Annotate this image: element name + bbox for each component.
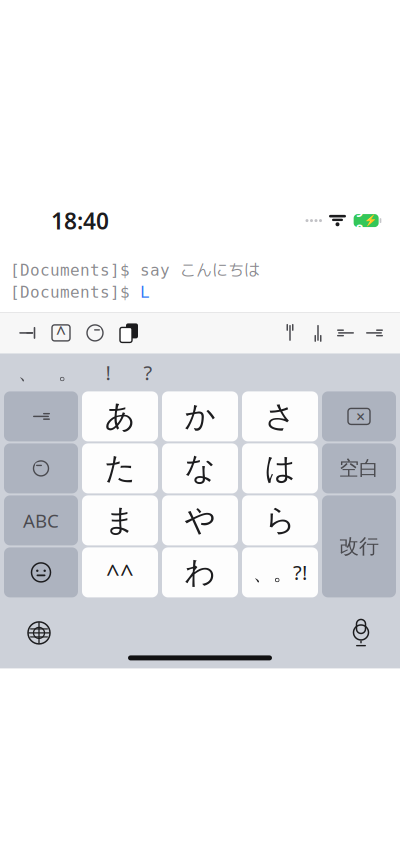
button[interactable]: Down: [304, 313, 332, 353]
staticText: ら: [264, 502, 295, 539]
staticText: [Documents]$ say こんにちは: [10, 261, 260, 280]
staticText: [Documents]$: [10, 283, 140, 301]
button[interactable]: Right: [360, 313, 388, 353]
button[interactable]: た: [82, 443, 158, 493]
button[interactable]: [4, 443, 78, 493]
staticText: 18:40: [51, 205, 109, 236]
button[interactable]: ら: [242, 495, 318, 545]
staticText: ABC: [23, 508, 59, 533]
staticText: さ: [264, 398, 295, 435]
staticText: ま: [104, 502, 135, 539]
button[interactable]: Up: [276, 313, 304, 353]
staticText: ×: [356, 406, 365, 427]
staticText: 、: [18, 360, 38, 385]
staticText: ⚡: [364, 214, 377, 227]
staticText: ^: [56, 321, 66, 344]
staticText: か: [184, 398, 215, 435]
button[interactable]: や: [162, 495, 238, 545]
button[interactable]: Dictate: [336, 611, 386, 655]
staticText: !: [105, 359, 110, 386]
button[interactable]: !: [88, 355, 128, 389]
button[interactable]: ま: [82, 495, 158, 545]
staticText: ^^: [106, 556, 134, 588]
staticText: 98: [356, 203, 364, 238]
button[interactable]: か: [162, 391, 238, 441]
staticText: た: [104, 450, 135, 487]
button[interactable]: さ: [242, 391, 318, 441]
button[interactable]: Control: [44, 313, 78, 353]
button[interactable]: [4, 547, 78, 597]
button[interactable]: ?: [128, 355, 168, 389]
button[interactable]: ^^: [82, 547, 158, 597]
button[interactable]: Next keyboard: [14, 611, 64, 655]
button[interactable]: 空白: [322, 443, 396, 493]
staticText: な: [184, 450, 215, 487]
staticText: や: [184, 502, 215, 539]
button[interactable]: Left: [332, 313, 360, 353]
staticText: 空白: [339, 456, 379, 481]
staticText: あ: [104, 398, 135, 435]
button[interactable]: 、。?!: [242, 547, 318, 597]
button[interactable]: Tab: [10, 313, 44, 353]
staticText: は: [264, 450, 295, 487]
button[interactable]: あ: [82, 391, 158, 441]
button[interactable]: は: [242, 443, 318, 493]
button[interactable]: わ: [162, 547, 238, 597]
button[interactable]: な: [162, 443, 238, 493]
button[interactable]: History: [78, 313, 112, 353]
button[interactable]: Paste: [112, 313, 146, 353]
button[interactable]: ×: [322, 391, 396, 441]
staticText: 。: [58, 360, 78, 385]
button[interactable]: 。: [48, 355, 88, 389]
staticText: 、。?!: [253, 559, 307, 586]
staticText: 改行: [339, 534, 379, 559]
button[interactable]: 、: [8, 355, 48, 389]
staticText: L: [140, 283, 150, 301]
button[interactable]: [4, 391, 78, 441]
button[interactable]: 改行: [322, 495, 396, 597]
staticText: ?: [143, 359, 152, 386]
staticText: わ: [184, 554, 215, 591]
button[interactable]: ABC: [4, 495, 78, 545]
